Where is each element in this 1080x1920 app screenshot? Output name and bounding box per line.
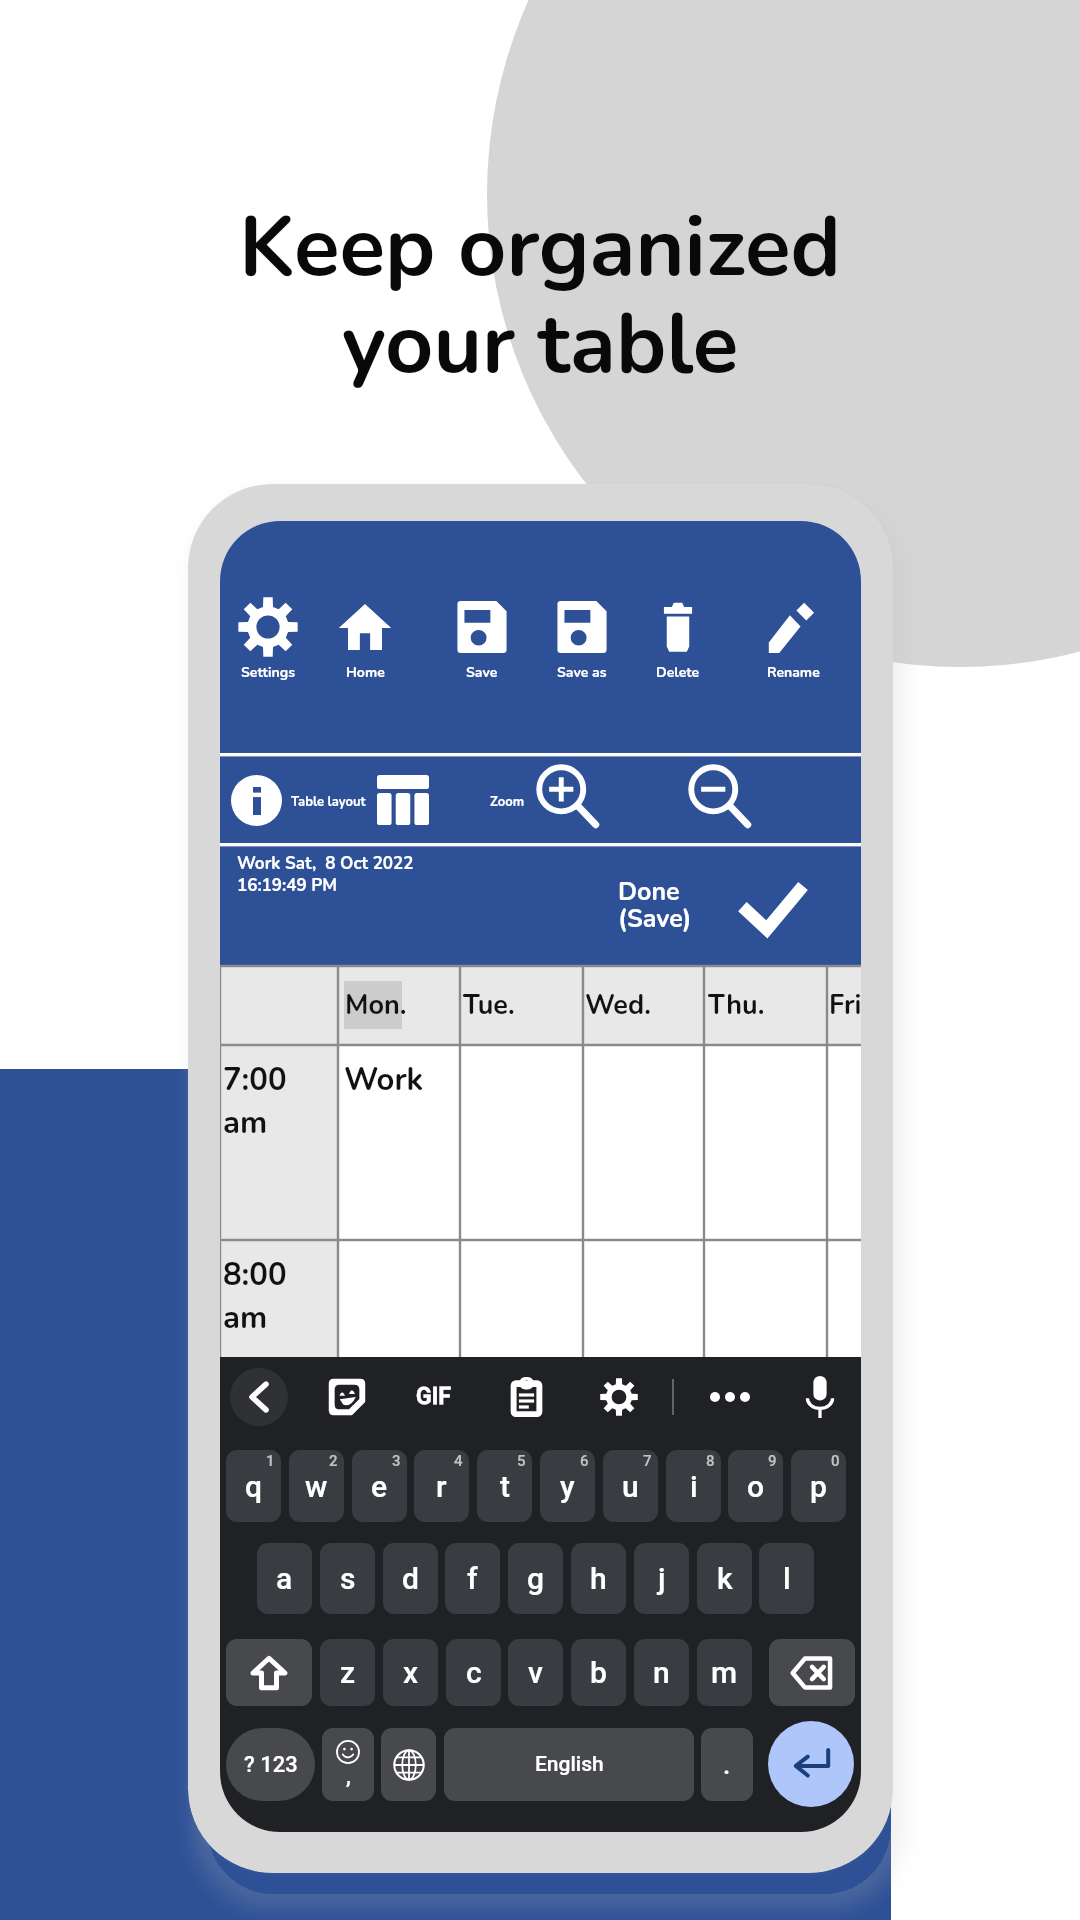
staticText: w xyxy=(305,1469,328,1504)
staticText: ? 123 xyxy=(244,1752,298,1778)
button[interactable]: Shift xyxy=(226,1639,312,1706)
button[interactable]: y xyxy=(540,1450,595,1522)
button[interactable]: p xyxy=(791,1450,846,1522)
button[interactable]: k xyxy=(697,1543,752,1614)
staticText: 5 xyxy=(517,1452,526,1470)
button[interactable]: Rename xyxy=(747,593,839,693)
staticText: p xyxy=(810,1469,827,1504)
button[interactable]: q xyxy=(226,1450,281,1522)
staticText: a xyxy=(276,1561,293,1596)
staticText: 9 xyxy=(768,1452,777,1470)
button[interactable]: j xyxy=(634,1543,689,1614)
button[interactable]: English xyxy=(444,1728,694,1801)
button[interactable]: More xyxy=(710,1392,750,1402)
button[interactable]: i xyxy=(666,1450,721,1522)
button[interactable]: GIF xyxy=(416,1383,451,1410)
button[interactable]: Voice input xyxy=(805,1375,835,1419)
button[interactable]: e xyxy=(352,1450,407,1522)
button[interactable]: o xyxy=(728,1450,783,1522)
staticText: b xyxy=(590,1655,607,1690)
staticText: Zoom xyxy=(490,793,525,811)
button[interactable]: b xyxy=(571,1639,626,1706)
button[interactable]: Save as xyxy=(536,593,628,693)
staticText: 8:00 am xyxy=(223,1254,287,1339)
button[interactable]: w xyxy=(289,1450,344,1522)
staticText: o xyxy=(747,1469,765,1504)
staticText: s xyxy=(340,1561,356,1596)
staticText: l xyxy=(783,1561,791,1596)
button[interactable]: a xyxy=(257,1543,312,1614)
button[interactable]: Delete xyxy=(632,593,724,693)
button[interactable]: Zoom out xyxy=(690,767,752,829)
staticText: q xyxy=(245,1469,263,1504)
staticText: r xyxy=(436,1469,447,1504)
button[interactable]: l xyxy=(759,1543,814,1614)
staticText: Thu. xyxy=(708,987,765,1024)
staticText: y xyxy=(560,1469,575,1504)
staticText: Home xyxy=(346,663,385,682)
staticText: Table layout xyxy=(291,793,366,811)
staticText: 2 xyxy=(329,1452,338,1470)
button[interactable]: s xyxy=(320,1543,375,1614)
staticText: Rename xyxy=(767,663,820,682)
button[interactable]: Keyboard settings xyxy=(600,1378,638,1416)
button[interactable]: Clipboard xyxy=(510,1377,543,1417)
button[interactable]: Enter xyxy=(768,1721,854,1807)
staticText: n xyxy=(653,1655,670,1690)
staticText: 3 xyxy=(392,1452,401,1470)
staticText: , xyxy=(346,1764,351,1790)
staticText: h xyxy=(590,1561,607,1596)
staticText: z xyxy=(340,1655,356,1690)
staticText: Fri. xyxy=(829,987,861,1024)
button[interactable]: h xyxy=(571,1543,626,1614)
button[interactable]: Backspace xyxy=(769,1639,855,1706)
button[interactable]: r xyxy=(414,1450,469,1522)
staticText: Save xyxy=(466,663,498,682)
staticText: . xyxy=(723,1750,731,1780)
button[interactable]: . xyxy=(701,1728,753,1801)
staticText: 7:00 am xyxy=(223,1059,287,1144)
staticText: x xyxy=(403,1655,419,1690)
staticText: 7 xyxy=(643,1452,652,1470)
staticText: f xyxy=(467,1561,478,1596)
staticText: u xyxy=(622,1469,639,1504)
button[interactable]: m xyxy=(697,1639,752,1706)
staticText: e xyxy=(371,1469,388,1504)
staticText: English xyxy=(535,1752,604,1777)
button[interactable]: d xyxy=(383,1543,438,1614)
button[interactable]: c xyxy=(446,1639,501,1706)
staticText: Work xyxy=(344,1059,424,1101)
staticText: 4 xyxy=(454,1452,463,1470)
staticText: 6 xyxy=(580,1452,589,1470)
button[interactable]: x xyxy=(383,1639,438,1706)
button[interactable]: Table layout info xyxy=(231,775,282,826)
staticText: t xyxy=(500,1469,510,1504)
button[interactable]: ? 123 xyxy=(226,1728,315,1801)
button[interactable]: u xyxy=(603,1450,658,1522)
staticText: v xyxy=(528,1655,543,1690)
staticText: 8 xyxy=(706,1452,715,1470)
button[interactable]: Zoom in xyxy=(538,767,600,829)
button[interactable]: Change language xyxy=(381,1728,436,1801)
button[interactable]: Done (Save) xyxy=(610,871,810,941)
button[interactable]: f xyxy=(445,1543,500,1614)
button[interactable]: Back xyxy=(230,1368,288,1426)
button[interactable]: z xyxy=(320,1639,375,1706)
button[interactable]: Save xyxy=(436,593,528,693)
staticText: Tue. xyxy=(463,987,515,1024)
button[interactable]: t xyxy=(477,1450,532,1522)
staticText: Settings xyxy=(241,663,295,682)
button[interactable]: g xyxy=(508,1543,563,1614)
button[interactable]: Home xyxy=(319,593,411,693)
staticText: Work Sat, 8 Oct 2022 16:19:49 PM xyxy=(237,852,414,897)
staticText: Delete xyxy=(656,663,700,682)
button[interactable]: n xyxy=(634,1639,689,1706)
button[interactable]: Stickers xyxy=(328,1378,366,1416)
button[interactable]: Table layout xyxy=(377,775,429,825)
staticText: g xyxy=(527,1561,545,1596)
button[interactable]: v xyxy=(508,1639,563,1706)
button[interactable]: Emoji xyxy=(322,1728,374,1801)
button[interactable]: Settings xyxy=(222,593,314,693)
staticText: Wed. xyxy=(585,987,651,1024)
staticText: Done (Save) xyxy=(618,875,692,936)
